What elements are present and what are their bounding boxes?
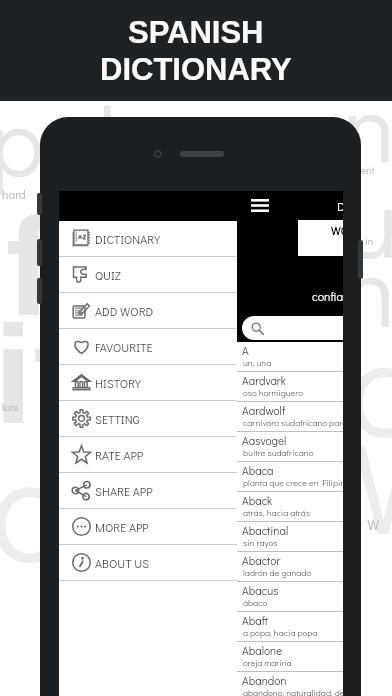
staticText: Abandon [242, 673, 287, 688]
staticText: A [242, 343, 249, 358]
button[interactable]: DICTIONARY [59, 221, 237, 257]
staticText: FAVOURITE [95, 339, 153, 355]
staticText: SETTING [95, 411, 140, 427]
staticText: abandono, naturalidad, desenfreno [243, 687, 343, 696]
staticText: WO [352, 400, 392, 568]
button[interactable]: Abandon [237, 672, 343, 696]
button[interactable]: ABOUT US [59, 545, 237, 581]
button[interactable]: MORE APP [59, 509, 237, 545]
staticText: HISTORY [95, 375, 141, 391]
staticText: un, una [243, 357, 272, 369]
button[interactable]: QUIZ [59, 257, 237, 293]
button[interactable]: Abacus [237, 582, 343, 612]
staticText: Abaft [242, 613, 268, 628]
staticText: ao [348, 290, 392, 474]
button[interactable]: A [237, 342, 343, 372]
staticText: SHARE APP [95, 483, 153, 499]
button[interactable]: Aardwolf [237, 402, 343, 432]
staticText: Aardvark [242, 373, 286, 388]
staticText: hard [2, 186, 26, 202]
staticText: ppl [0, 76, 118, 202]
staticText: Aback [242, 493, 273, 508]
staticText: Aasvogel [242, 433, 287, 448]
staticText: oso hormiguero [243, 387, 304, 399]
staticText: lots [2, 399, 19, 413]
staticText: Abactinal [242, 523, 289, 538]
staticText: nco [342, 222, 392, 353]
staticText: planta que crece en Filipinas [243, 477, 343, 489]
staticText: sin rayos [243, 537, 278, 549]
staticText: buitre sudafricano [243, 447, 314, 459]
staticText: DICTIONARY [95, 231, 161, 247]
staticText: Aardwolf [242, 403, 286, 418]
staticText: oel [0, 404, 179, 601]
staticText: f [6, 188, 53, 344]
button[interactable]: Aasvogel [237, 432, 343, 462]
staticText: ábaco [243, 597, 268, 609]
staticText: oreja marina [243, 657, 292, 669]
staticText: ADD WORD [95, 303, 154, 319]
staticText: uno [292, 62, 392, 188]
button[interactable]: Abalone [237, 642, 343, 672]
staticText: Abactor [242, 553, 281, 568]
staticText: confianza [312, 288, 343, 304]
staticText: carnívoro sudafricano parecido a la hien… [243, 417, 343, 429]
staticText: Abaca [242, 463, 274, 478]
button[interactable]: Abaca [237, 462, 343, 492]
staticText: DICTIONARY [337, 197, 343, 214]
staticText: ss W [348, 515, 380, 533]
button[interactable]: SETTING [59, 401, 237, 437]
button[interactable] [242, 316, 343, 340]
staticText: a popa, hacia popa [243, 627, 318, 639]
staticText: RATE APP [95, 447, 144, 463]
button[interactable]: FAVOURITE [59, 329, 237, 365]
staticText: ladrón de ganado [243, 567, 312, 579]
staticText: oment [348, 164, 375, 177]
staticText: MORE APP [95, 519, 149, 535]
staticText: Abalone [242, 643, 283, 658]
staticText: QUIZ [95, 267, 121, 283]
button[interactable]: HISTORY [59, 365, 237, 401]
staticText: DICTIONARY [100, 52, 292, 87]
staticText: ABOUT US [95, 555, 150, 571]
button[interactable]: Abactor [237, 552, 343, 582]
button[interactable]: ADD WORD [59, 293, 237, 329]
staticText: iff [0, 296, 127, 452]
staticText: atrás, hacia atrás [243, 507, 311, 519]
staticText: SPANISH [128, 15, 264, 50]
button[interactable]: Open navigation drawer [246, 191, 274, 219]
button[interactable]: SHARE APP [59, 473, 237, 509]
button[interactable]: Aback [237, 492, 343, 522]
button[interactable]: Aardvark [237, 372, 343, 402]
button[interactable]: WORD OF THE DAY [298, 220, 343, 256]
button[interactable]: Abaft [237, 612, 343, 642]
staticText: rt in [350, 235, 374, 248]
button[interactable]: RATE APP [59, 437, 237, 473]
staticText: Abacus [242, 583, 279, 598]
staticText: WORD OF THE DAY [331, 223, 343, 238]
staticText: ua [344, 152, 392, 283]
button[interactable]: Abactinal [237, 522, 343, 552]
